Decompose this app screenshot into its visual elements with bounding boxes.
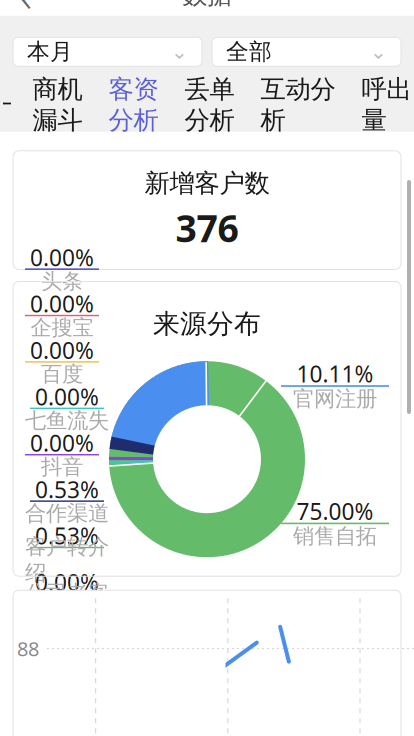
button[interactable]: 丢单分析 — [184, 83, 234, 128]
staticText: 丢单分析 — [184, 74, 234, 136]
staticText: 企搜宝 — [30, 315, 93, 341]
staticText: ⌄ — [370, 40, 387, 63]
staticText: 抖音 — [41, 454, 83, 480]
staticText: 全部 — [226, 38, 272, 66]
staticText: 10.11% — [296, 359, 373, 389]
staticText: 0.53% — [35, 521, 99, 551]
staticText: 0.00% — [35, 567, 99, 597]
staticText: 0.00% — [30, 335, 94, 365]
button[interactable]: 商机漏斗 — [32, 83, 82, 128]
staticText: 0.53% — [35, 474, 99, 504]
staticText: 0.00% — [35, 382, 99, 412]
staticText: 0.00% — [30, 614, 94, 644]
staticText: ‹ — [20, 0, 32, 25]
staticText: 官网注册 — [293, 386, 377, 412]
staticText: 公司老客户 — [25, 580, 109, 632]
staticText: 数据 — [182, 0, 232, 10]
staticText: 客户转介绍 — [25, 533, 109, 586]
staticText: 本月 — [27, 38, 73, 66]
staticText: 376 — [175, 203, 238, 252]
button[interactable]: Back — [4, 0, 48, 16]
button[interactable]: 本月 — [13, 37, 202, 66]
button[interactable]: 互动分析 — [260, 83, 335, 128]
staticText: 88 — [17, 635, 39, 662]
staticText: 0.00% — [30, 289, 94, 319]
staticText: 百度 — [41, 361, 83, 387]
staticText: 客资分析 — [108, 74, 158, 136]
staticText: ⌄ — [171, 40, 188, 63]
button[interactable]: 客资分析 — [108, 83, 158, 128]
staticText: 七鱼流失 — [25, 407, 109, 434]
staticText: 新增客户数 — [144, 168, 269, 199]
staticText: 头条 — [41, 268, 83, 294]
staticText: 销售自拓 — [293, 523, 377, 549]
staticText: 0.00% — [30, 242, 94, 272]
staticText: 合作渠道 — [25, 500, 109, 526]
staticText: 0.00% — [30, 428, 94, 458]
staticText: 其它 — [41, 639, 83, 666]
button[interactable]: 呼出量 — [361, 83, 411, 128]
staticText: 来源分布 — [153, 307, 261, 340]
staticText: 商机漏斗 — [32, 74, 82, 136]
staticText: 十 — [2, 90, 27, 121]
staticText: 互动分析 — [260, 74, 335, 136]
staticText: 呼出量 — [361, 74, 411, 136]
staticText: 75.00% — [296, 496, 373, 526]
button[interactable]: 全部 — [212, 37, 401, 66]
